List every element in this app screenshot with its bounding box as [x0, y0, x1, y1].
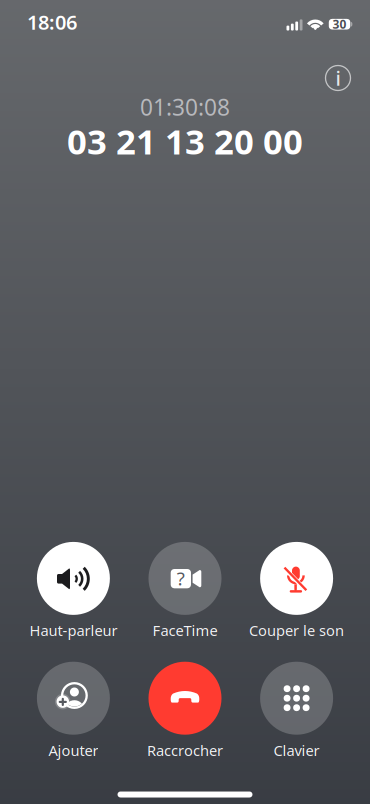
button[interactable]: Clavier [241, 662, 352, 799]
staticText: FaceTime [152, 621, 217, 640]
staticText: 30 [333, 16, 347, 32]
staticText: 01:30:08 [140, 92, 230, 122]
staticText: 03 21 13 20 00 [67, 118, 303, 164]
staticText: i [335, 65, 340, 91]
button[interactable]: ? [129, 542, 241, 679]
staticText: Haut-parleur [29, 621, 117, 640]
staticText: ? [177, 566, 185, 591]
button[interactable]: Ajouter [18, 662, 129, 799]
staticText: 18:06 [27, 9, 77, 35]
staticText: Ajouter [48, 740, 98, 760]
button[interactable]: Couper le son [241, 542, 352, 679]
staticText: Couper le son [249, 621, 344, 640]
button[interactable]: Raccrocher [129, 662, 241, 799]
staticText: Clavier [274, 740, 320, 760]
staticText: Raccrocher [147, 740, 223, 760]
button[interactable]: Haut-parleur [18, 542, 129, 679]
button[interactable]: Call info [325, 65, 350, 90]
